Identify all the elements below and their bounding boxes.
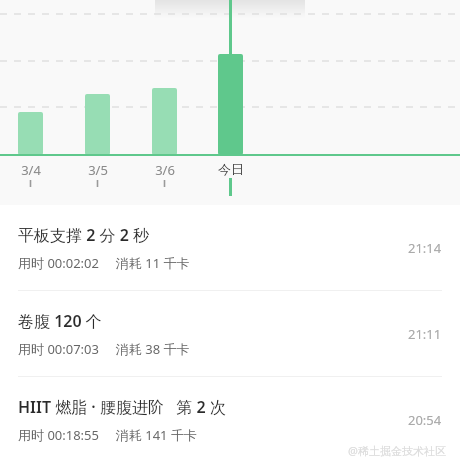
staticText: 21:11 <box>408 325 442 343</box>
button[interactable]: 平板支撑 2 分 2 秒 <box>0 205 460 291</box>
staticText: 3/5 <box>80 161 116 179</box>
staticText: 20:54 <box>408 411 442 429</box>
staticText: 平板支撑 2 分 2 秒 <box>18 224 149 246</box>
staticText: 卷腹 120 个 <box>18 310 102 332</box>
staticText: 3/6 <box>147 161 183 179</box>
staticText: 用时 00:02:02 消耗 11 千卡 <box>18 254 190 272</box>
button[interactable]: 3/4 <box>0 0 460 205</box>
button[interactable]: HIIT 燃脂 · 腰腹进阶 第 2 次 <box>0 377 460 460</box>
staticText: 21:14 <box>408 239 442 257</box>
staticText: 用时 00:18:55 消耗 141 千卡 <box>18 426 197 444</box>
staticText: 用时 00:07:03 消耗 38 千卡 <box>18 340 190 358</box>
staticText: HIIT 燃脂 · 腰腹进阶 第 2 次 <box>18 396 226 418</box>
staticText: 3/4 <box>13 161 49 179</box>
staticText: 今日 <box>205 161 257 177</box>
button[interactable]: 卷腹 120 个 <box>0 291 460 377</box>
staticText: @稀土掘金技术社区 <box>348 443 446 458</box>
